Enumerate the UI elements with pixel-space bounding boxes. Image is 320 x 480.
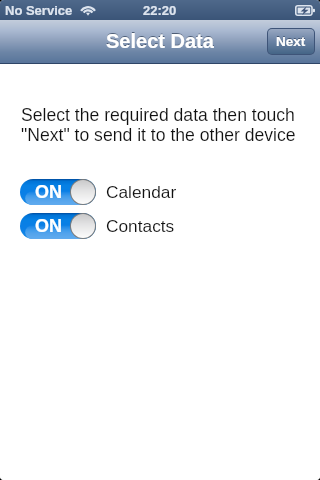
staticText: ON bbox=[35, 216, 62, 236]
staticText: Calendar bbox=[106, 182, 177, 201]
staticText: 22:20 bbox=[143, 3, 177, 18]
staticText: ON bbox=[35, 182, 62, 202]
button[interactable]: On bbox=[0, 179, 320, 205]
other: On bbox=[20, 213, 96, 239]
staticText: No Service bbox=[5, 3, 73, 18]
other: On bbox=[20, 179, 96, 205]
staticText: Select the required data then touch "Nex… bbox=[21, 105, 296, 145]
staticText: Next bbox=[276, 33, 306, 48]
staticText: Select Data bbox=[106, 30, 214, 52]
staticText: Contacts bbox=[106, 216, 175, 235]
staticText: Select Data bbox=[106, 29, 214, 51]
button[interactable]: Next bbox=[268, 29, 314, 54]
button[interactable]: On bbox=[0, 213, 320, 239]
staticText: Next bbox=[276, 34, 306, 49]
